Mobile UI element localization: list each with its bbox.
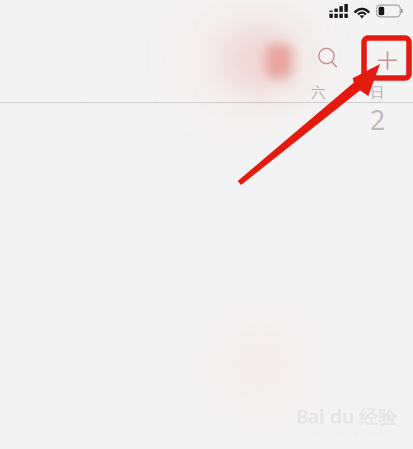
staticText: Bai du 经验	[296, 404, 397, 429]
staticText: 2	[370, 102, 385, 137]
button[interactable]: Search	[308, 38, 348, 78]
staticText: 六	[311, 83, 326, 101]
button[interactable]: Add Event	[367, 40, 407, 80]
staticText: 日	[370, 83, 385, 101]
staticText: 1	[311, 102, 326, 137]
staticText: 五	[252, 83, 267, 101]
